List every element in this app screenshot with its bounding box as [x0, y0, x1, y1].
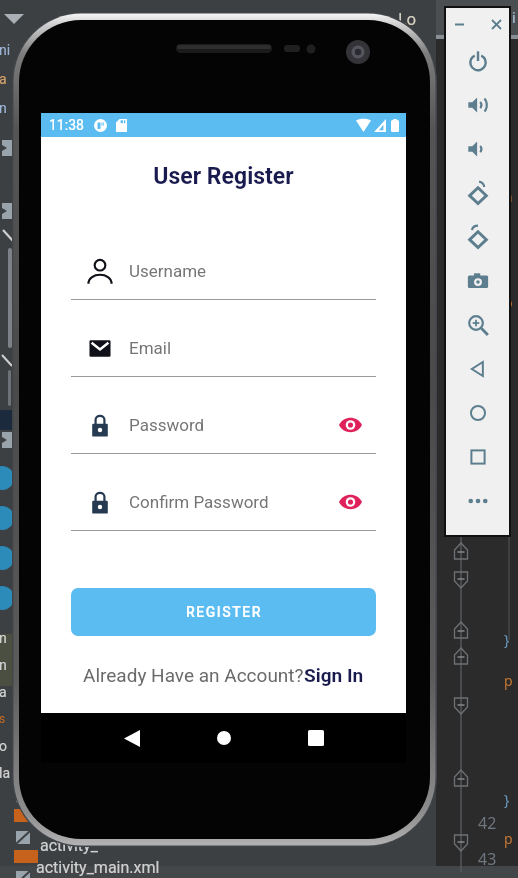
staticText: c: [504, 322, 511, 341]
staticText: Password: [129, 415, 205, 435]
button[interactable]: Confirm Password: [71, 484, 376, 520]
staticText: Confirm Password: [129, 492, 269, 512]
staticText: a: [0, 71, 7, 87]
button[interactable]: Overview: [446, 435, 509, 479]
staticText: p: [504, 293, 513, 312]
button[interactable]: Password: [71, 407, 376, 443]
staticText: Username: [129, 261, 207, 281]
staticText: o: [0, 738, 7, 754]
button[interactable]: Email: [71, 330, 376, 366]
staticText: n: [0, 630, 7, 646]
button[interactable]: Volume down: [446, 127, 509, 171]
button[interactable]: Screenshot: [446, 259, 509, 303]
button[interactable]: Zoom: [446, 303, 509, 347]
staticText: }: [504, 340, 510, 359]
staticText: User Register: [41, 163, 406, 190]
button[interactable]: Minimize: [449, 14, 469, 34]
staticText: Email: [129, 338, 172, 358]
button[interactable]: Recents: [296, 718, 336, 758]
button[interactable]: Home: [446, 391, 509, 435]
button[interactable]: Home: [204, 718, 244, 758]
button[interactable]: Toggle password visibility: [337, 412, 363, 438]
button[interactable]: Sign In: [304, 664, 364, 686]
staticText: i: [512, 8, 516, 27]
button[interactable]: Volume up: [446, 83, 509, 127]
button[interactable]: Toggle password visibility: [337, 489, 363, 515]
staticText: REGISTER: [186, 604, 262, 620]
staticText: 43: [478, 848, 497, 870]
staticText: activity_main.xml: [36, 858, 160, 877]
staticText: activity_: [40, 836, 98, 855]
button[interactable]: Back: [446, 347, 509, 391]
button[interactable]: Username: [71, 253, 376, 289]
staticText: Sign In: [304, 664, 364, 686]
staticText: Lo: [398, 8, 417, 30]
staticText: p: [504, 829, 513, 848]
staticText: a: [504, 140, 512, 159]
staticText: la: [0, 765, 11, 781]
staticText: Already Have an Account?: [83, 664, 304, 686]
staticText: a: [0, 684, 7, 700]
button[interactable]: REGISTER: [71, 588, 376, 636]
staticText: ni: [0, 42, 11, 58]
staticText: p: [504, 671, 513, 690]
staticText: s: [0, 712, 6, 726]
staticText: }: [504, 630, 510, 649]
staticText: n: [504, 187, 513, 206]
staticText: s: [504, 234, 511, 253]
staticText: 11:38: [49, 117, 84, 133]
button[interactable]: Close: [486, 14, 506, 34]
staticText: n: [0, 100, 7, 116]
button[interactable]: Power: [446, 39, 509, 83]
staticText: }: [504, 790, 510, 809]
staticText: n: [0, 657, 7, 673]
button[interactable]: Back: [112, 718, 152, 758]
button[interactable]: Rotate left: [446, 171, 509, 215]
staticText: 42: [478, 812, 497, 834]
button[interactable]: Rotate right: [446, 215, 509, 259]
button[interactable]: More: [446, 479, 509, 523]
